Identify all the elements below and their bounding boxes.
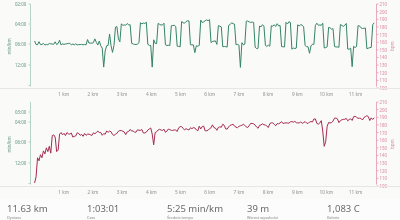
staticText: 1:03:01 [87,202,120,215]
staticText: Wzrost wysokości [247,215,279,220]
staticText: 1,083 C [327,202,360,215]
button[interactable]: 39 m [240,199,320,220]
staticText: 11.63 km [7,202,48,215]
button[interactable]: 1,083 C [320,199,400,220]
staticText: 39 m [247,202,270,215]
button[interactable]: 11.63 km [0,199,80,220]
staticText: Czas [87,215,96,220]
staticText: Dystans [7,215,22,220]
staticText: Średnie tempo [167,215,194,220]
staticText: Kalorie [327,215,340,220]
staticText: 5:25 min/km [167,202,224,215]
button[interactable]: 1:03:01 [80,199,160,220]
button[interactable]: 5:25 min/km [160,199,240,220]
